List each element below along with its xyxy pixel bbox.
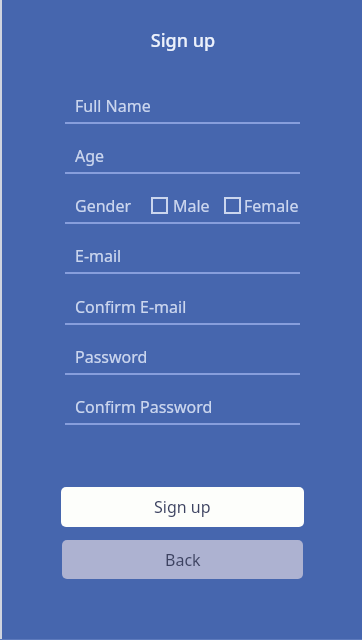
staticText: Confirm E-mail <box>75 296 187 318</box>
button[interactable]: E-mail <box>65 243 300 274</box>
button[interactable]: Sign up <box>61 487 304 527</box>
button[interactable]: Confirm Password <box>65 394 300 425</box>
staticText: Sign up <box>3 28 362 53</box>
staticText: Full Name <box>75 95 151 117</box>
button[interactable]: Confirm E-mail <box>65 294 300 325</box>
staticText: E-mail <box>75 245 122 267</box>
button[interactable]: Female <box>221 193 300 218</box>
button[interactable]: Full Name <box>65 93 300 124</box>
staticText: Age <box>75 145 105 167</box>
staticText: Male <box>173 195 210 217</box>
staticText: Gender <box>75 195 132 217</box>
button[interactable]: Male <box>148 193 211 218</box>
staticText: Back <box>165 549 201 571</box>
staticText: Sign up <box>154 496 211 518</box>
button[interactable]: Back <box>62 540 303 579</box>
button[interactable]: Password <box>65 344 300 375</box>
staticText: Confirm Password <box>75 396 213 418</box>
staticText: Female <box>244 195 299 217</box>
button[interactable]: Age <box>65 143 300 174</box>
staticText: Password <box>75 346 148 368</box>
